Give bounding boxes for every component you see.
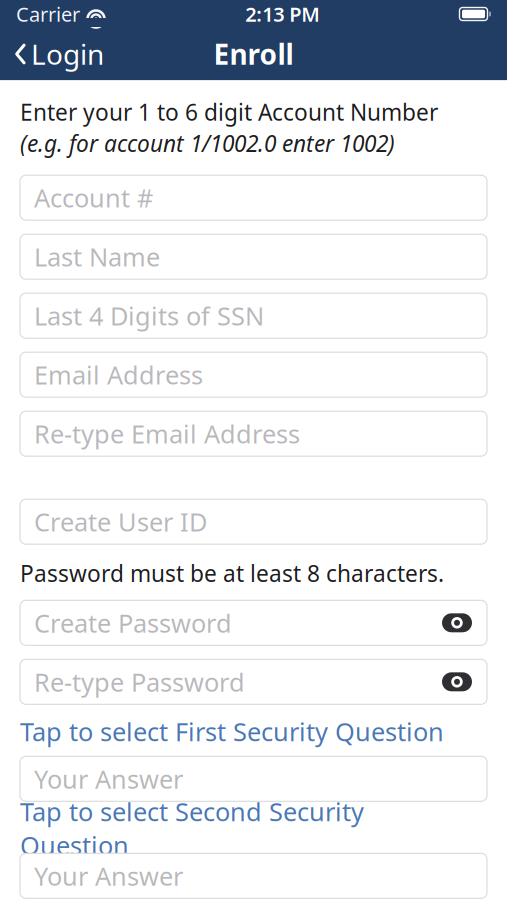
staticText: Re-type Password <box>34 665 245 699</box>
staticText: Create Password <box>34 606 232 640</box>
staticText: Enroll <box>213 35 293 73</box>
button[interactable]: Account # <box>20 175 487 220</box>
button[interactable]: Your Answer <box>20 756 487 801</box>
staticText: Login <box>31 35 104 73</box>
staticText: Re-type Email Address <box>34 417 300 450</box>
staticText: Last 4 Digits of SSN <box>34 299 264 332</box>
staticText: Your Answer <box>34 859 183 893</box>
staticText: Tap to select Second Security Question <box>20 795 364 862</box>
button[interactable]: Re-type Email Address <box>20 411 487 456</box>
button[interactable]: Tap to select Second Security Question <box>20 813 487 843</box>
staticText: 2:13 PM <box>245 1 320 27</box>
staticText: Your Answer <box>34 762 183 796</box>
button[interactable]: Last 4 Digits of SSN <box>20 293 487 338</box>
button[interactable]: Your Answer <box>20 853 487 898</box>
staticText: Password must be at least 8 characters. <box>20 558 444 588</box>
button[interactable]: Create User ID <box>20 499 487 544</box>
button[interactable]: Re-type Password <box>20 659 487 704</box>
staticText: Create User ID <box>34 505 207 538</box>
button[interactable]: Tap to select First Security Question <box>20 716 487 746</box>
staticText: Account # <box>34 181 153 214</box>
staticText: Carrier <box>16 1 80 27</box>
button[interactable]: Create Password <box>20 600 487 645</box>
button[interactable]: Email Address <box>20 352 487 397</box>
staticText: Enter your 1 to 6 digit Account Number <box>20 97 438 127</box>
staticText: Email Address <box>34 358 203 391</box>
staticText: (e.g. for account 1/1002.0 enter 1002) <box>20 128 395 158</box>
button[interactable]: Login <box>0 32 118 76</box>
staticText: Last Name <box>34 240 160 273</box>
button[interactable]: Last Name <box>20 234 487 279</box>
staticText: Tap to select First Security Question <box>20 714 444 748</box>
